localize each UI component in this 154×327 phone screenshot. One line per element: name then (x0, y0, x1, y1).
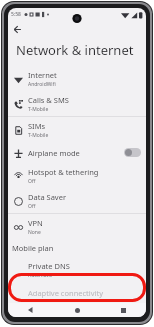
staticText: 5:58 (11, 11, 21, 18)
staticText: Data Saver (28, 192, 67, 202)
staticText: Internet (28, 70, 57, 80)
staticText: Network & internet (16, 41, 134, 59)
staticText: AndroidWifi (28, 81, 56, 88)
button[interactable]: Airplane mode (8, 142, 146, 163)
staticText: VPN (28, 218, 43, 228)
button[interactable]: SIMs (8, 117, 146, 142)
button[interactable]: Hotspot & tethering (8, 163, 146, 188)
button[interactable]: Recent apps (100, 303, 146, 317)
staticText: SIMs (28, 121, 46, 131)
staticText: Adaptive connectivity (28, 288, 104, 298)
staticText: Off (28, 178, 36, 185)
button[interactable]: Back (8, 303, 54, 317)
button[interactable]: Adaptive connectivity (8, 282, 146, 303)
button[interactable]: Back (11, 23, 24, 36)
staticText: Automatic (28, 272, 53, 279)
button[interactable]: Calls & SMS (8, 91, 146, 116)
staticText: T-Mobile (28, 132, 49, 139)
staticText: Calls & SMS (28, 95, 69, 105)
staticText: Private DNS (28, 261, 70, 271)
button[interactable]: Private DNS (8, 257, 146, 282)
staticText: Airplane mode (28, 148, 80, 158)
staticText: Mobile plan (12, 243, 54, 253)
staticText: T-Mobile (28, 106, 49, 113)
staticText: Off (28, 203, 36, 210)
button[interactable]: Home (54, 303, 100, 317)
button[interactable]: VPN (8, 214, 146, 239)
button[interactable]: Airplane mode toggle (124, 148, 141, 157)
button[interactable]: Internet (8, 66, 146, 91)
button[interactable]: Data Saver (8, 188, 146, 213)
staticText: None (28, 229, 41, 236)
staticText: Hotspot & tethering (28, 167, 99, 177)
